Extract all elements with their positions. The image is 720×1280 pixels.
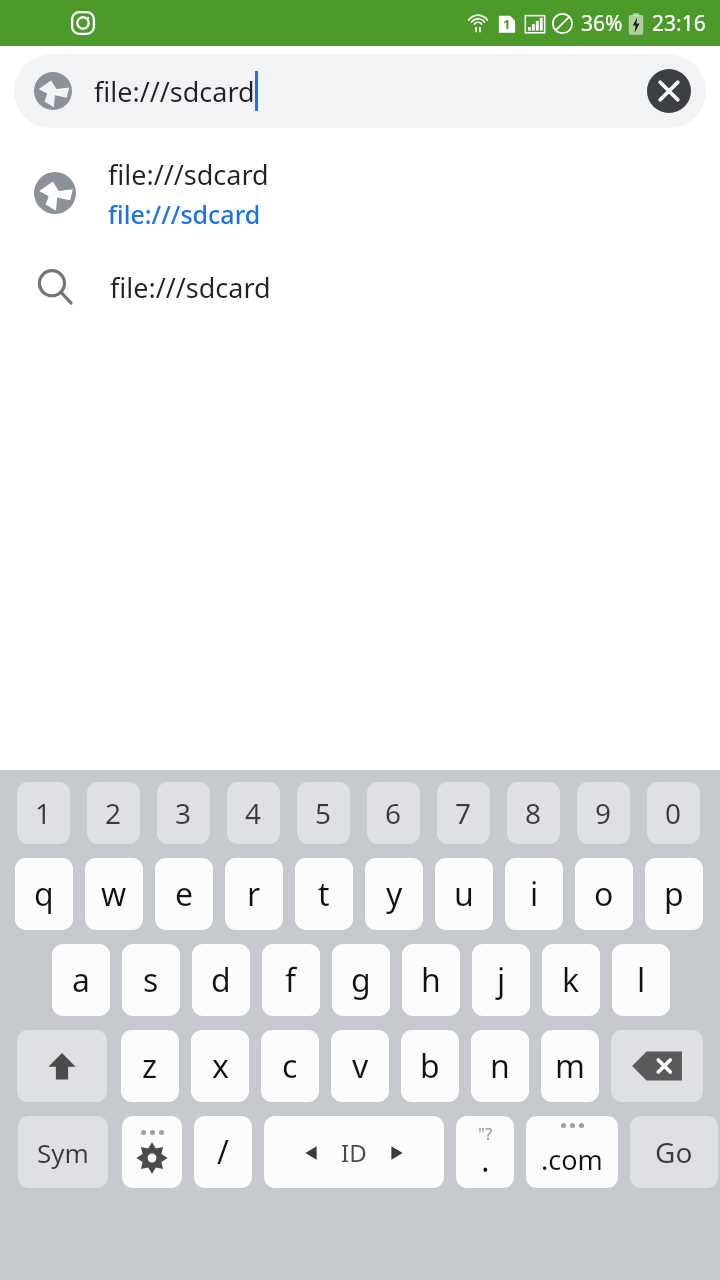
button[interactable]: 5 [297,782,350,844]
staticText: 23:16 [652,9,706,38]
staticText: 4 [245,794,262,832]
staticText: t [318,872,330,916]
button[interactable]: w [85,858,143,930]
staticText: 9 [595,794,612,832]
staticText: .com [541,1141,603,1178]
button[interactable]: a [52,944,110,1016]
staticText: file:///sdcard [108,156,269,193]
button[interactable]: i [505,858,563,930]
button[interactable]: m [541,1030,599,1102]
button[interactable]: file:///sdcard [14,54,706,128]
staticText: i [530,872,539,916]
staticText: u [454,872,474,916]
staticText: r [247,872,261,916]
button[interactable]: Backspace [611,1030,703,1102]
button[interactable]: j [472,944,530,1016]
button[interactable]: .com [526,1116,618,1188]
staticText: 2 [105,794,122,832]
staticText: d [211,958,231,1002]
staticText: o [594,872,614,916]
staticText: e [175,872,194,916]
button[interactable]: y [365,858,423,930]
staticText: Go [655,1133,693,1171]
staticText: p [664,872,684,916]
staticText: 1 [35,794,52,832]
button[interactable]: c [261,1030,319,1102]
button[interactable]: 1 [17,782,70,844]
staticText: file:///sdcard [110,269,271,306]
staticText: w [101,872,127,916]
button[interactable]: "? [456,1116,514,1188]
button[interactable]: Sym [18,1116,108,1188]
button[interactable]: 3 [157,782,210,844]
button[interactable]: p [645,858,703,930]
staticText: n [490,1044,510,1088]
button[interactable]: s [122,944,180,1016]
button[interactable]: e [155,858,213,930]
button[interactable]: z [121,1030,179,1102]
staticText: z [142,1044,158,1088]
button[interactable]: 8 [507,782,560,844]
staticText: l [637,958,646,1002]
staticText: ID [341,1136,367,1169]
staticText: a [72,958,90,1002]
button[interactable]: u [435,858,493,930]
button[interactable]: g [332,944,390,1016]
staticText: 6 [385,794,402,832]
button[interactable]: k [542,944,600,1016]
staticText: 5 [315,794,332,832]
staticText: j [497,958,506,1002]
button[interactable]: d [192,944,250,1016]
staticText: file:///sdcard [94,73,255,110]
staticText: c [282,1044,298,1088]
button[interactable]: r [225,858,283,930]
staticText: f [285,958,297,1002]
button[interactable]: v [331,1030,389,1102]
staticText: k [562,958,580,1002]
button[interactable]: t [295,858,353,930]
button[interactable]: file:///sdcard [0,242,720,332]
staticText: h [421,958,441,1002]
button[interactable]: Space [264,1116,444,1188]
button[interactable]: Go [630,1116,718,1188]
button[interactable]: o [575,858,633,930]
button[interactable]: Settings [122,1116,182,1188]
staticText: q [34,872,54,916]
staticText: y [386,872,403,916]
staticText: . [481,1138,490,1182]
staticText: 36% [581,9,623,38]
staticText: 0 [665,794,682,832]
staticText: 1 [503,15,511,33]
staticText: 8 [525,794,542,832]
staticText: / [217,1130,229,1174]
button[interactable]: f [262,944,320,1016]
button[interactable]: x [191,1030,249,1102]
staticText: x [212,1044,229,1088]
staticText: Sym [37,1135,89,1170]
button[interactable]: 4 [227,782,280,844]
button[interactable]: 7 [437,782,490,844]
button[interactable]: Shift [17,1030,107,1102]
button[interactable]: 2 [87,782,140,844]
staticText: v [352,1044,369,1088]
button[interactable]: 9 [577,782,630,844]
button[interactable]: / [194,1116,252,1188]
button[interactable]: 6 [367,782,420,844]
button[interactable]: h [402,944,460,1016]
button[interactable]: 0 [647,782,700,844]
staticText: "? [478,1122,493,1145]
staticText: 3 [175,794,192,832]
staticText: s [143,958,159,1002]
button[interactable]: n [471,1030,529,1102]
staticText: 7 [455,794,472,832]
button[interactable]: q [15,858,73,930]
button[interactable]: Clear text [646,68,692,114]
button[interactable]: b [401,1030,459,1102]
button[interactable]: l [612,944,670,1016]
staticText: b [420,1044,440,1088]
staticText: m [555,1044,585,1088]
staticText: g [351,958,371,1002]
staticText: file:///sdcard [108,197,261,231]
button[interactable]: file:///sdcard [0,144,720,242]
